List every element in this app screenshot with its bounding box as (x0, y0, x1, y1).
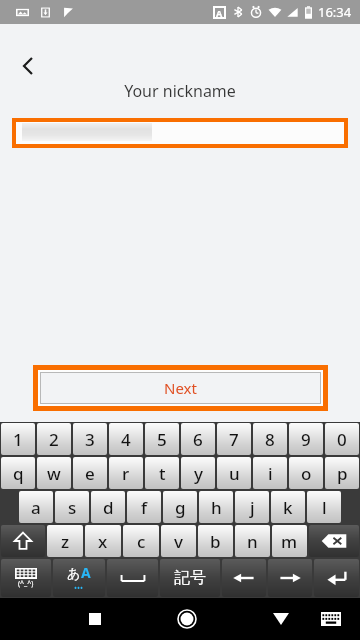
button[interactable]: r (109, 457, 143, 489)
button[interactable]: Next (40, 372, 321, 404)
staticText: r (122, 462, 130, 485)
staticText: s (68, 496, 77, 519)
staticText: i (268, 462, 273, 485)
staticText: 16:34 (318, 3, 352, 21)
staticText: d (103, 496, 114, 519)
button[interactable]: q (1, 457, 35, 489)
button[interactable]: 2 (37, 423, 71, 455)
staticText: 7 (229, 428, 239, 451)
staticText: 3 (85, 428, 95, 451)
staticText: c (137, 530, 146, 553)
staticText: a (31, 496, 41, 519)
staticText: k (283, 496, 293, 519)
staticText: j (250, 496, 255, 519)
staticText: ••• (74, 582, 84, 593)
button[interactable]: o (289, 457, 323, 489)
button[interactable]: d (91, 491, 125, 523)
staticText: 5 (157, 428, 167, 451)
button[interactable]: k (271, 491, 305, 523)
staticText: Your nickname (0, 80, 360, 102)
staticText: 0 (337, 428, 347, 451)
button[interactable]: 6 (181, 423, 215, 455)
staticText: z (61, 530, 70, 553)
button[interactable]: v (161, 525, 196, 557)
button[interactable]: h (199, 491, 233, 523)
staticText: m (281, 530, 298, 553)
staticText: w (47, 462, 61, 485)
staticText: 記号 (174, 568, 206, 588)
staticText: 6 (193, 428, 203, 451)
staticText: x (98, 530, 108, 553)
button[interactable]: 4 (109, 423, 143, 455)
staticText: u (229, 462, 240, 485)
button[interactable]: c (123, 525, 159, 557)
staticText: q (13, 462, 24, 485)
staticText: t (159, 462, 166, 485)
button[interactable]: y (181, 457, 215, 489)
button[interactable]: m (272, 525, 307, 557)
button[interactable]: a (19, 491, 53, 523)
staticText: 1 (13, 428, 23, 451)
button[interactable]: Right (268, 559, 312, 597)
staticText: Next (164, 378, 197, 398)
button[interactable]: x (85, 525, 121, 557)
staticText: A (216, 7, 223, 19)
staticText: 2 (49, 428, 59, 451)
button[interactable]: 5 (145, 423, 179, 455)
button[interactable]: z (47, 525, 83, 557)
button[interactable]: u (217, 457, 251, 489)
staticText: あ (67, 565, 81, 581)
staticText: g (175, 496, 186, 519)
button[interactable]: g (163, 491, 197, 523)
button[interactable]: 8 (253, 423, 287, 455)
button[interactable]: i (253, 457, 287, 489)
button[interactable]: 3 (73, 423, 107, 455)
button[interactable]: f (127, 491, 161, 523)
button[interactable]: Left (222, 559, 266, 597)
staticText: p (337, 462, 348, 485)
button[interactable]: Space (107, 559, 158, 597)
button[interactable]: Backspace (309, 525, 359, 557)
button[interactable]: 1 (1, 423, 35, 455)
button[interactable]: 0 (325, 423, 359, 455)
staticText: e (85, 462, 95, 485)
button[interactable]: l (307, 491, 341, 523)
button[interactable]: s (55, 491, 89, 523)
button[interactable]: 9 (289, 423, 323, 455)
staticText: A (81, 563, 91, 582)
staticText: h (211, 496, 222, 519)
staticText: b (210, 530, 221, 553)
button[interactable]: b (198, 525, 233, 557)
button[interactable] (16, 122, 344, 144)
button[interactable]: Input mode (53, 559, 105, 597)
button[interactable]: j (235, 491, 269, 523)
staticText: n (247, 530, 258, 553)
button[interactable]: Home (157, 598, 217, 640)
button[interactable]: w (37, 457, 71, 489)
button[interactable]: Switch keyboard (1, 559, 51, 597)
button[interactable]: Back (8, 46, 48, 86)
button[interactable]: Keyboard (306, 598, 356, 640)
staticText: o (301, 462, 312, 485)
button[interactable]: n (235, 525, 270, 557)
button[interactable]: t (145, 457, 179, 489)
staticText: 8 (265, 428, 275, 451)
staticText: v (174, 530, 183, 553)
staticText: y (194, 462, 203, 485)
button[interactable]: Back (256, 598, 306, 640)
button[interactable]: 記号 (160, 559, 220, 597)
staticText: l (322, 496, 327, 519)
button[interactable]: Shift (1, 525, 45, 557)
button[interactable]: p (325, 457, 359, 489)
staticText: (^_^) (18, 579, 34, 589)
button[interactable]: Enter (314, 559, 359, 597)
button[interactable]: e (73, 457, 107, 489)
staticText: 4 (121, 428, 131, 451)
staticText: 9 (301, 428, 311, 451)
staticText: f (141, 496, 148, 519)
button[interactable]: 7 (217, 423, 251, 455)
button[interactable]: Recents (65, 598, 125, 640)
